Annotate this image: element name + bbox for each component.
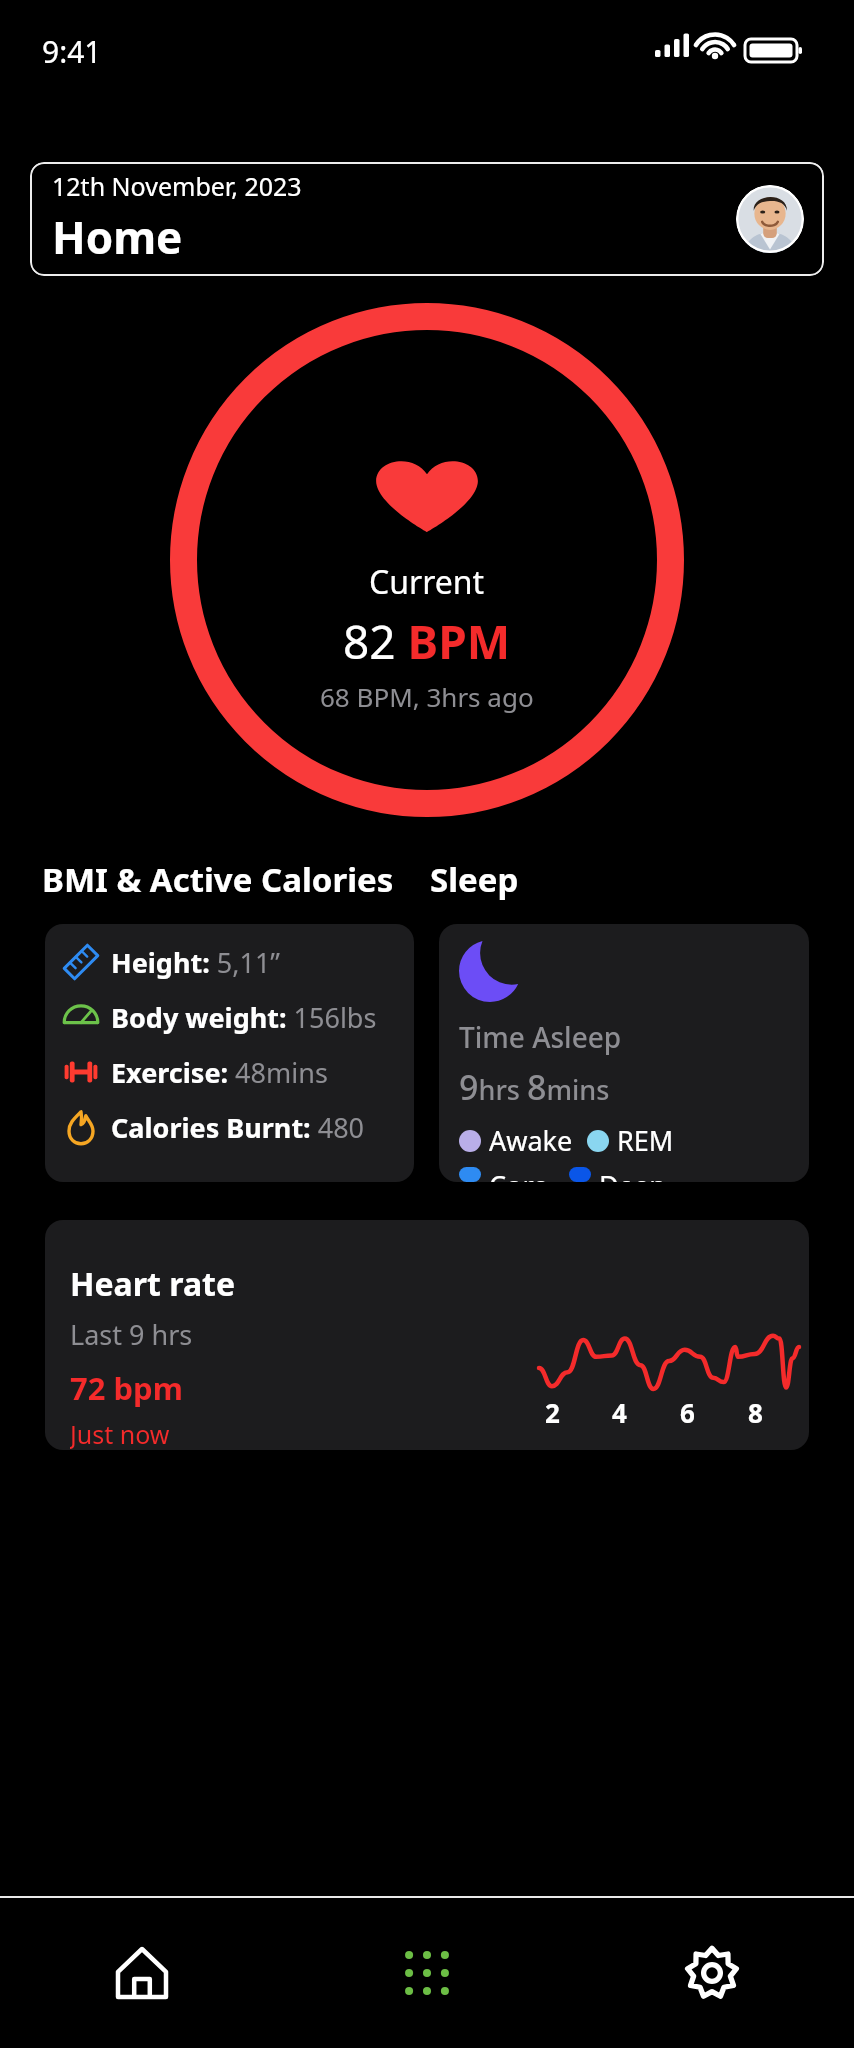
staticText: 4 [612, 1395, 627, 1430]
staticText: Core [489, 1167, 549, 1182]
staticText: 6 [680, 1395, 695, 1430]
staticText: BMI & Active Calories [42, 857, 424, 902]
button[interactable]: Height: 5,11” [45, 924, 414, 1182]
staticText: Height: 5,11” [111, 944, 281, 981]
staticText: 2 [545, 1395, 560, 1430]
staticText: Deep [599, 1167, 666, 1182]
button[interactable]: Time Asleep [439, 924, 809, 1182]
button[interactable]: Profile [736, 185, 804, 253]
staticText: Last 9 hrs [70, 1316, 193, 1353]
staticText: Heart rate [70, 1262, 236, 1306]
staticText: Home [52, 207, 183, 267]
button[interactable]: Heart rate [45, 1220, 809, 1450]
button[interactable]: Apps [284, 1898, 569, 2048]
staticText: Body weight: 156lbs [111, 999, 377, 1036]
staticText: Sleep [430, 857, 812, 902]
staticText: 8 [748, 1395, 763, 1430]
staticText: Calories Burnt: 480 [111, 1109, 365, 1146]
staticText: Awake [489, 1122, 573, 1159]
staticText: Current [369, 560, 485, 604]
staticText: Exercise: 48mins [111, 1054, 328, 1091]
staticText: REM [617, 1122, 674, 1159]
staticText: 82 BPM [343, 610, 511, 673]
staticText: Just now [70, 1417, 170, 1450]
button[interactable]: Home [0, 1898, 284, 2048]
staticText: 9hrs 8mins [459, 1064, 610, 1110]
staticText: 68 BPM, 3hrs ago [320, 679, 534, 714]
staticText: 12th November, 2023 [52, 169, 302, 203]
button[interactable]: 12th November, 2023 [30, 162, 824, 276]
staticText: 9:41 [42, 31, 102, 72]
button[interactable]: Settings [569, 1898, 854, 2048]
staticText: Time Asleep [459, 1018, 622, 1056]
staticText: 72 bpm [70, 1367, 183, 1409]
